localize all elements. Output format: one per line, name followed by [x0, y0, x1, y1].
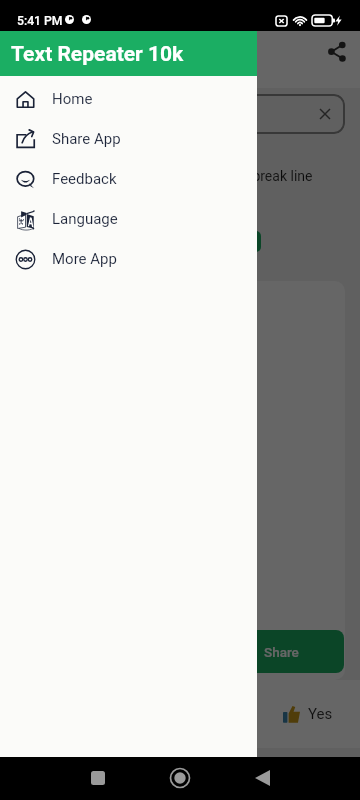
button[interactable]: Share [321, 36, 351, 66]
staticText: Text Repeater 10k [11, 42, 184, 67]
button[interactable]: Share [16, 630, 344, 673]
button[interactable]: Repeat [180, 231, 261, 252]
button[interactable]: More App [0, 239, 257, 279]
staticText: Home [52, 90, 93, 108]
staticText: Language [52, 210, 118, 228]
button[interactable]: Recents [84, 764, 112, 792]
button[interactable]: Feedback [0, 159, 257, 199]
staticText: Enter Your Text [28, 105, 129, 123]
button[interactable]: Home [165, 763, 195, 793]
staticText: Add break line [224, 168, 313, 184]
button[interactable]: Yes [283, 705, 333, 723]
button[interactable]: Open navigation menu [10, 36, 40, 66]
button[interactable]: Language [0, 199, 257, 239]
staticText: Share App [52, 130, 121, 148]
staticText: 5:41 PM [17, 14, 63, 28]
button[interactable]: Back [247, 763, 277, 793]
staticText: Yes [308, 705, 333, 723]
button[interactable]: Home [0, 79, 257, 119]
staticText: More App [52, 250, 117, 268]
staticText: Feedback [52, 170, 117, 188]
staticText: Text Repeater 10k [56, 40, 203, 61]
staticText: Share [264, 644, 299, 660]
button[interactable]: Share App [0, 119, 257, 159]
